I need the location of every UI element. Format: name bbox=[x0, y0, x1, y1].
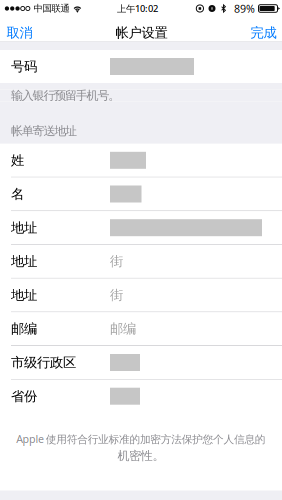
staticText: 名 bbox=[11, 186, 24, 202]
staticText: 邮编 bbox=[110, 321, 136, 337]
staticText: 地址 bbox=[11, 219, 37, 236]
button[interactable]: 地址 bbox=[0, 279, 282, 312]
button[interactable]: 姓 bbox=[0, 144, 282, 177]
staticText: 省份 bbox=[11, 388, 37, 404]
staticText: 输入银行预留手机号。 bbox=[11, 88, 120, 103]
staticText: 取消 bbox=[6, 25, 32, 41]
button[interactable]: 市级行政区 bbox=[0, 346, 282, 379]
staticText: 市级行政区 bbox=[11, 354, 76, 371]
button[interactable]: 地址 bbox=[0, 245, 282, 278]
staticText: 地址 bbox=[11, 253, 37, 270]
staticText: 街 bbox=[110, 287, 123, 303]
button[interactable]: 名 bbox=[0, 177, 282, 210]
staticText: 完成 bbox=[251, 25, 277, 41]
staticText: 地址 bbox=[11, 287, 37, 303]
staticText: 邮编 bbox=[11, 321, 37, 337]
button[interactable]: 邮编 bbox=[0, 312, 282, 345]
staticText: 中国联通 bbox=[33, 3, 69, 14]
staticText: 姓 bbox=[11, 152, 24, 168]
button[interactable]: 完成 bbox=[243, 17, 282, 41]
staticText: 机密性。 bbox=[117, 448, 164, 463]
staticText: Apple 使用符合行业标准的加密方法保护您个人信息的 bbox=[16, 432, 266, 446]
staticText: 帐户设置 bbox=[115, 25, 167, 41]
staticText: 帐单寄送地址 bbox=[11, 124, 77, 138]
staticText: 街 bbox=[110, 253, 123, 270]
staticText: 89% bbox=[234, 1, 255, 16]
button[interactable]: 号码 bbox=[0, 50, 282, 83]
staticText: 号码 bbox=[11, 58, 37, 75]
button[interactable]: 地址 bbox=[0, 211, 282, 244]
staticText: 上午10:02 bbox=[117, 2, 158, 15]
button[interactable]: 取消 bbox=[0, 17, 40, 41]
button[interactable]: 省份 bbox=[0, 380, 282, 413]
